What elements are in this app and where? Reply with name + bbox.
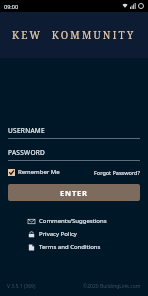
button[interactable]: Remember Me xyxy=(8,168,60,176)
staticText: USERNAME xyxy=(8,126,45,135)
button[interactable]: ENTER xyxy=(8,184,140,201)
staticText: Remember Me xyxy=(18,168,60,176)
staticText: KEW KOMMUNITY xyxy=(12,28,136,42)
staticText: V 3.5.1 (369) xyxy=(7,283,36,290)
button[interactable]: USERNAME xyxy=(8,126,140,139)
staticText: Comments/Suggestions xyxy=(39,217,107,225)
staticText: Terms and Conditions xyxy=(39,243,101,251)
staticText: PASSWORD xyxy=(8,148,46,157)
button[interactable]: PASSWORD xyxy=(8,148,140,161)
button[interactable]: Comments/Suggestions xyxy=(28,217,120,225)
button[interactable]: Terms and Conditions xyxy=(28,243,120,251)
staticText: ENTER xyxy=(60,188,88,198)
staticText: 09:00 xyxy=(4,3,19,10)
staticText: Privacy Policy xyxy=(39,230,77,238)
staticText: ©2020 BuildingLink.com xyxy=(83,283,141,290)
button[interactable]: Privacy Policy xyxy=(28,230,120,238)
button[interactable]: Forgot Password? xyxy=(94,169,140,176)
